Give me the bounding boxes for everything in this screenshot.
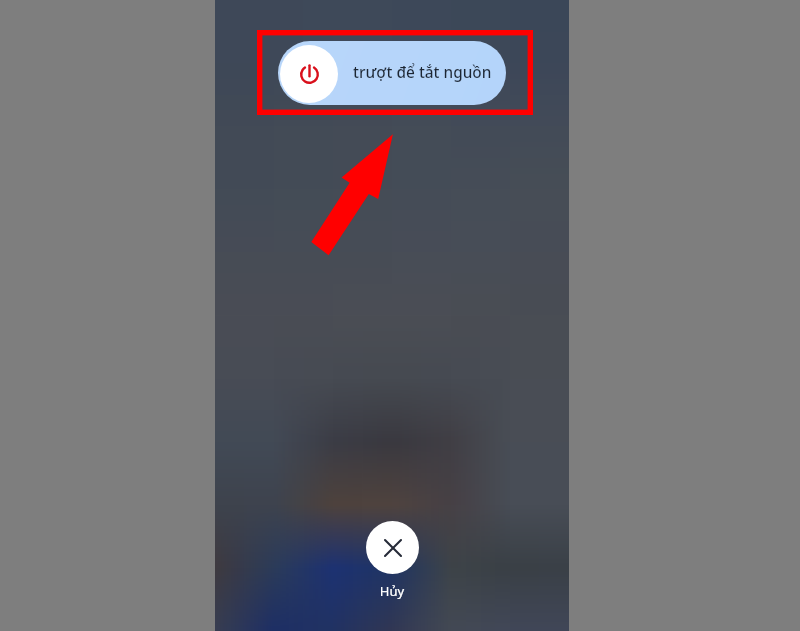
staticText: trượt để tắt nguồn <box>353 62 492 83</box>
staticText: Hủy <box>362 582 422 600</box>
button[interactable]: trượt để tắt nguồn <box>278 41 506 105</box>
button[interactable]: Hủy <box>362 521 422 592</box>
other: Power <box>280 45 338 103</box>
